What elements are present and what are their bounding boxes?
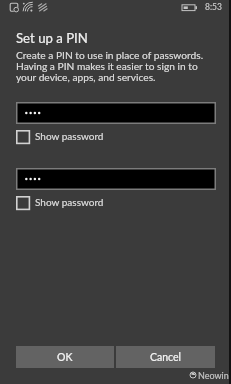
staticText: Show password <box>35 196 104 208</box>
button[interactable]: OK <box>16 346 114 368</box>
button[interactable]: Show password <box>16 196 104 211</box>
button[interactable]: Cancel <box>116 346 215 368</box>
button[interactable]: PIN entry <box>16 168 216 190</box>
staticText: OK <box>57 351 73 364</box>
staticText: Create a PIN to use in place of password… <box>16 49 205 83</box>
button[interactable]: Show password <box>16 130 104 145</box>
staticText: 8:53 <box>205 2 222 12</box>
staticText: Show password <box>35 130 104 142</box>
other: Status bar <box>0 0 231 20</box>
button[interactable]: PIN entry <box>16 102 216 124</box>
staticText: Neowin <box>198 370 229 381</box>
staticText: Set up a PIN <box>16 30 88 46</box>
staticText: Cancel <box>150 351 182 364</box>
